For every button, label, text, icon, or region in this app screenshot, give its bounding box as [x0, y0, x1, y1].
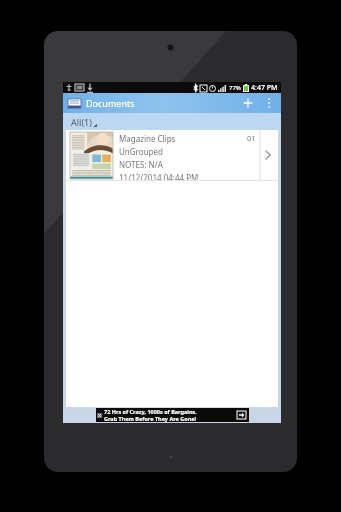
staticText: Magazine Clips: [119, 133, 247, 144]
staticText: 01: [247, 133, 256, 143]
staticText: Grab Them Before They Are Gone!: [104, 415, 197, 422]
button[interactable]: Magazine Clips: [66, 130, 278, 180]
staticText: 72 Hrs of Crazy, 1000s of Bargains.: [104, 408, 197, 415]
staticText: UnGrouped: [119, 146, 163, 157]
staticText: Documents: [86, 97, 135, 109]
button[interactable]: More options: [262, 93, 276, 113]
staticText: 4:47 PM: [251, 83, 278, 93]
staticText: 11/12/2014 04:44 PM: [119, 172, 199, 180]
button[interactable]: Close ad: [97, 413, 102, 418]
button[interactable]: Add document: [238, 93, 258, 113]
button[interactable]: Close ad: [96, 408, 249, 422]
staticText: 77%: [229, 84, 241, 92]
staticText: All(1): [71, 116, 92, 128]
staticText: NOTES: N/A: [119, 159, 163, 170]
button[interactable]: All(1): [71, 116, 97, 128]
button[interactable]: Open ad: [236, 410, 247, 420]
button[interactable]: Open document: [260, 130, 278, 180]
